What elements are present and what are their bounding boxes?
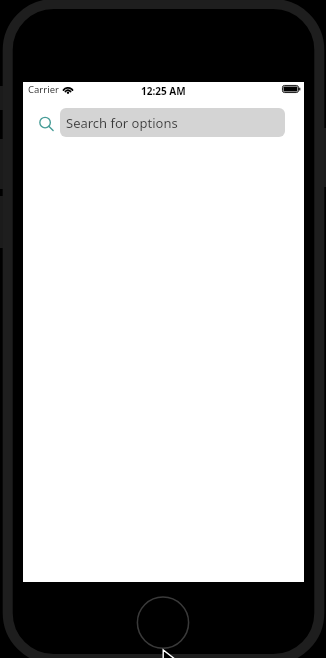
staticText: Search for options: [66, 114, 178, 132]
other: Battery full: [282, 85, 300, 93]
staticText: Carrier: [28, 83, 59, 96]
staticText: 12:25 AM: [141, 84, 186, 98]
button[interactable]: Search for options: [60, 108, 285, 137]
button[interactable]: Home: [137, 597, 189, 649]
button[interactable]: Search: [34, 112, 56, 134]
other: Wi-Fi: [62, 85, 74, 94]
